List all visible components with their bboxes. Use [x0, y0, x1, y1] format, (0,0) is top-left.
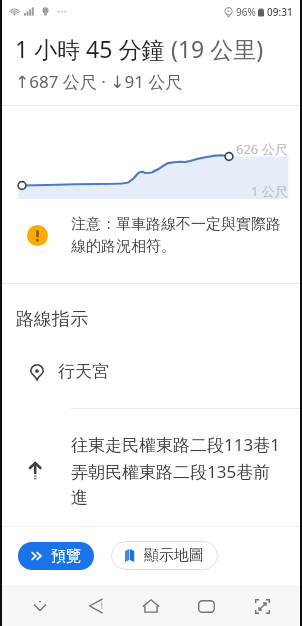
staticText: 顯示地圖 — [144, 546, 204, 565]
button[interactable]: Fullscreen — [245, 589, 279, 623]
staticText: 注意：單車路線不一定與實際路線的路況相符。 — [71, 215, 286, 256]
button[interactable]: 行天宮 — [2, 349, 300, 408]
staticText: 96% — [236, 5, 256, 19]
button[interactable]: 往東走民權東路二段113巷1弄朝民權東路二段135巷前進 — [2, 409, 300, 514]
staticText: (19 公里) — [165, 33, 264, 64]
button[interactable]: 預覽 — [18, 542, 94, 570]
staticText: 預覽 — [51, 547, 81, 566]
staticText: 1 公尺 — [251, 182, 288, 200]
staticText: 路線指示 — [16, 308, 88, 331]
staticText: 1 小時 45 分鐘 — [15, 33, 165, 64]
staticText: 09:31 — [267, 5, 293, 19]
button[interactable]: Hide keyboard — [23, 589, 57, 623]
button[interactable]: Recent apps — [189, 589, 223, 623]
button[interactable]: Back — [79, 589, 113, 623]
staticText: 626 公尺 — [236, 140, 288, 158]
staticText: 往東走民權東路二段113巷1弄朝民權東路二段135巷前進 — [71, 433, 287, 508]
staticText: ↑687 公尺 · ↓91 公尺 — [15, 70, 183, 93]
button[interactable]: Home — [134, 589, 168, 623]
staticText: 行天宮 — [58, 361, 109, 382]
button[interactable]: 顯示地圖 — [111, 541, 218, 570]
